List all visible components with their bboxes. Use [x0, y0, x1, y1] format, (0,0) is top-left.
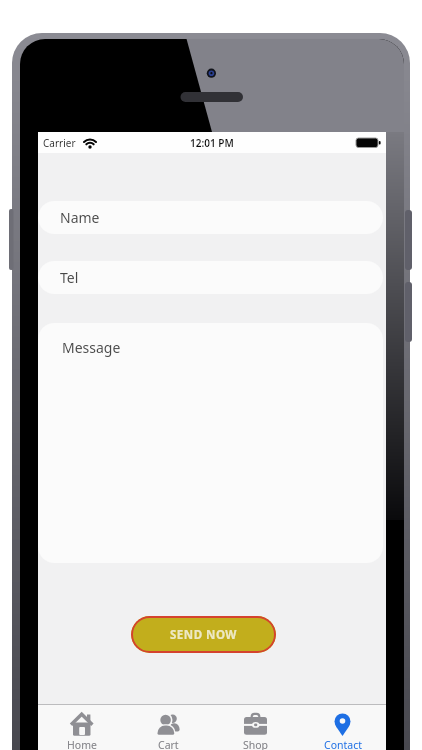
staticText: Name [60, 208, 100, 227]
button[interactable]: SEND NOW [131, 616, 276, 653]
staticText: Home [67, 738, 97, 750]
button[interactable]: Contact [299, 705, 386, 750]
button[interactable]: Home [38, 705, 125, 750]
button[interactable]: Message [38, 323, 383, 563]
staticText: Contact [324, 738, 362, 750]
button[interactable]: Name [38, 201, 383, 234]
staticText: Shop [243, 738, 269, 750]
staticText: Carrier [43, 136, 76, 150]
button[interactable]: Cart [125, 705, 212, 750]
staticText: Tel [60, 268, 79, 287]
staticText: 12:01 PM [190, 136, 234, 150]
staticText: Message [62, 338, 121, 357]
button[interactable]: Shop [212, 705, 299, 750]
button[interactable]: Tel [38, 261, 383, 294]
staticText: SEND NOW [170, 627, 237, 643]
staticText: Cart [158, 738, 179, 750]
